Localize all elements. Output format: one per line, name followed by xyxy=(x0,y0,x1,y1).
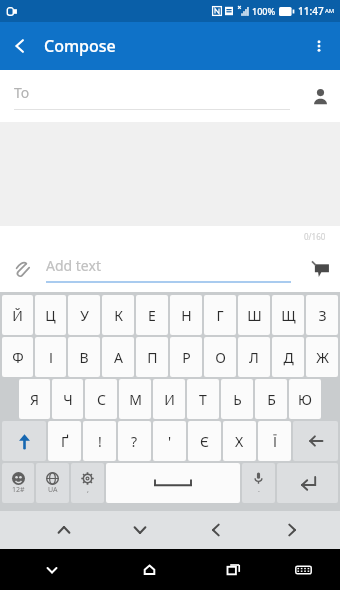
button[interactable]: З xyxy=(306,295,338,335)
button[interactable]: ' xyxy=(153,421,186,461)
staticText: Б xyxy=(267,390,276,409)
button[interactable]: Ц xyxy=(35,295,66,335)
staticText: 100% xyxy=(252,5,276,17)
button[interactable]: Send message xyxy=(302,250,340,288)
button[interactable]: Ю xyxy=(289,379,321,419)
staticText: Compose xyxy=(44,35,116,57)
button[interactable]: Voice input xyxy=(242,463,275,503)
button[interactable]: Д xyxy=(272,337,304,377)
button[interactable]: Е xyxy=(136,295,168,335)
staticText: Х xyxy=(235,432,244,451)
staticText: М xyxy=(129,390,142,409)
button[interactable]: Settings xyxy=(71,463,104,503)
button[interactable]: Є xyxy=(188,421,221,461)
staticText: Ь xyxy=(233,390,242,409)
staticText: Ю xyxy=(298,390,312,409)
button[interactable]: Switch keyboard xyxy=(271,549,336,590)
staticText: ! xyxy=(98,432,102,451)
staticText: Щ xyxy=(281,306,296,325)
staticText: И xyxy=(164,390,175,409)
button[interactable]: Т xyxy=(187,379,219,419)
button[interactable]: Щ xyxy=(272,295,304,335)
button[interactable]: Enter xyxy=(277,463,338,503)
staticText: Ї xyxy=(273,432,277,451)
staticText: 12# xyxy=(12,485,25,495)
button[interactable]: Ї xyxy=(258,421,291,461)
button[interactable]: Ж xyxy=(306,337,338,377)
button[interactable]: К xyxy=(102,295,134,335)
button[interactable]: А xyxy=(102,337,134,377)
staticText: З xyxy=(318,306,327,325)
button[interactable]: П xyxy=(136,337,168,377)
staticText: Ж xyxy=(316,348,329,367)
button[interactable]: Б xyxy=(255,379,287,419)
button[interactable]: Ч xyxy=(52,379,83,419)
staticText: Ч xyxy=(63,390,73,409)
staticText: Н xyxy=(181,306,192,325)
staticText: К xyxy=(114,306,123,325)
button[interactable]: Ґ xyxy=(48,421,81,461)
staticText: , xyxy=(87,485,89,495)
button[interactable]: Right xyxy=(254,511,330,549)
staticText: П xyxy=(147,348,158,367)
staticText: 11:47 xyxy=(298,4,324,18)
staticText: Ш xyxy=(247,306,262,325)
button[interactable]: Down xyxy=(102,511,178,549)
button[interactable]: Add recipient xyxy=(300,76,340,116)
staticText: To xyxy=(14,83,30,102)
button[interactable]: Back xyxy=(0,26,40,66)
button[interactable]: Space xyxy=(106,463,240,503)
button[interactable]: Backspace xyxy=(293,421,338,461)
button[interactable]: Г xyxy=(204,295,236,335)
staticText: Ґ xyxy=(61,432,69,451)
staticText: Й xyxy=(12,306,23,325)
staticText: Є xyxy=(200,432,209,451)
button[interactable]: М xyxy=(119,379,151,419)
staticText: UA xyxy=(48,485,58,495)
button[interactable]: Recent apps xyxy=(195,549,271,590)
staticText: І xyxy=(49,348,53,367)
button[interactable]: Л xyxy=(238,337,270,377)
staticText: ? xyxy=(131,432,138,451)
staticText: Add text xyxy=(46,256,101,275)
button[interactable]: Home xyxy=(103,549,195,590)
button[interactable]: Shift xyxy=(2,421,46,461)
button[interactable]: More options xyxy=(298,25,340,67)
button[interactable]: Attach xyxy=(4,251,40,287)
staticText: Ц xyxy=(45,306,56,325)
button[interactable]: Ь xyxy=(221,379,253,419)
staticText: . xyxy=(258,485,260,495)
button[interactable]: Р xyxy=(170,337,202,377)
button[interactable]: Й xyxy=(2,295,33,335)
staticText: AM xyxy=(325,7,335,15)
staticText: О xyxy=(215,348,226,367)
button[interactable]: Н xyxy=(170,295,202,335)
button[interactable]: Ф xyxy=(2,337,33,377)
staticText: Т xyxy=(199,390,207,409)
button[interactable]: Emoji and numbers xyxy=(2,463,34,503)
button[interactable]: Ш xyxy=(238,295,270,335)
button[interactable]: Up xyxy=(26,511,102,549)
staticText: 0/160 xyxy=(304,231,326,242)
staticText: В xyxy=(79,348,89,367)
button[interactable]: С xyxy=(85,379,117,419)
button[interactable]: О xyxy=(204,337,236,377)
staticText: Л xyxy=(249,348,259,367)
button[interactable]: І xyxy=(35,337,66,377)
button[interactable]: У xyxy=(68,295,100,335)
button[interactable]: Х xyxy=(223,421,256,461)
button[interactable]: ! xyxy=(83,421,116,461)
staticText: Я xyxy=(30,390,39,409)
staticText: ' xyxy=(168,432,172,451)
button[interactable]: Left xyxy=(178,511,254,549)
staticText: Д xyxy=(283,348,294,367)
button[interactable]: ? xyxy=(118,421,151,461)
staticText: Г xyxy=(216,306,224,325)
button[interactable]: Я xyxy=(19,379,50,419)
button[interactable]: Hide keyboard xyxy=(0,549,103,590)
button[interactable]: Change language xyxy=(36,463,69,503)
button[interactable]: И xyxy=(153,379,185,419)
staticText: С xyxy=(97,390,106,409)
button[interactable]: В xyxy=(68,337,100,377)
staticText: А xyxy=(114,348,123,367)
